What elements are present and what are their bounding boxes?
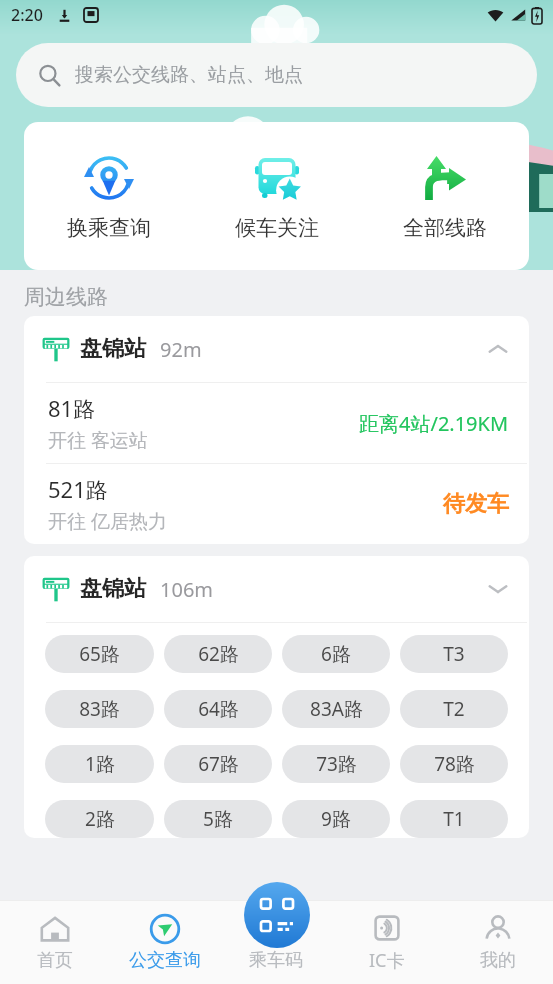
staticText: IC卡 bbox=[369, 948, 405, 973]
button[interactable]: 盘锦站 bbox=[24, 556, 529, 622]
staticText: 待发车 bbox=[443, 490, 509, 518]
button[interactable]: 全部线路 bbox=[361, 122, 529, 270]
button[interactable]: 搜索公交线路、站点、地点 bbox=[16, 43, 537, 107]
staticText: 1路 bbox=[85, 751, 115, 777]
staticText: 公交查询 bbox=[129, 949, 201, 972]
staticText: 我的 bbox=[480, 949, 516, 972]
button[interactable]: T1 bbox=[400, 800, 508, 838]
button[interactable]: 2路 bbox=[45, 800, 154, 838]
staticText: 开往 客运站 bbox=[48, 427, 148, 453]
button[interactable]: 67路 bbox=[164, 745, 272, 783]
staticText: 9路 bbox=[321, 806, 351, 832]
staticText: 78路 bbox=[434, 751, 475, 777]
staticText: 开往 亿居热力 bbox=[48, 508, 167, 534]
button[interactable]: 64路 bbox=[164, 690, 272, 728]
staticText: 521路 bbox=[48, 474, 108, 504]
staticText: 盘锦站 bbox=[80, 575, 146, 603]
button[interactable]: 62路 bbox=[164, 635, 272, 673]
button[interactable]: 5路 bbox=[164, 800, 272, 838]
button[interactable]: 换乘查询 bbox=[24, 122, 193, 270]
staticText: 83A路 bbox=[310, 696, 363, 722]
staticText: 距离4站/2.19KM bbox=[359, 410, 509, 437]
staticText: 65路 bbox=[79, 641, 120, 667]
staticText: T1 bbox=[443, 806, 465, 832]
staticText: 64路 bbox=[198, 696, 239, 722]
staticText: 106m bbox=[160, 576, 214, 603]
button[interactable]: 9路 bbox=[282, 800, 390, 838]
staticText: 搜索公交线路、站点、地点 bbox=[75, 63, 303, 87]
staticText: 候车关注 bbox=[235, 215, 319, 241]
button[interactable]: 65路 bbox=[45, 635, 154, 673]
staticText: 6路 bbox=[321, 641, 351, 667]
staticText: 2:20 bbox=[11, 4, 43, 26]
staticText: 92m bbox=[160, 336, 202, 363]
button[interactable]: 乘车码 bbox=[220, 913, 331, 972]
button[interactable]: 首页 bbox=[0, 913, 110, 972]
button[interactable]: 83A路 bbox=[282, 690, 390, 728]
button[interactable]: IC卡 bbox=[331, 912, 442, 973]
staticText: 73路 bbox=[316, 751, 357, 777]
button[interactable]: 78路 bbox=[400, 745, 508, 783]
staticText: 周边线路 bbox=[24, 284, 108, 310]
button[interactable]: 候车关注 bbox=[193, 122, 361, 270]
button[interactable]: 公交查询 bbox=[110, 913, 220, 972]
staticText: 81路 bbox=[48, 393, 96, 423]
staticText: 换乘查询 bbox=[67, 215, 151, 241]
staticText: 5路 bbox=[203, 806, 233, 832]
button[interactable]: 盘锦站 bbox=[24, 316, 529, 382]
button[interactable]: 83路 bbox=[45, 690, 154, 728]
staticText: T3 bbox=[443, 641, 465, 667]
button[interactable]: 6路 bbox=[282, 635, 390, 673]
staticText: 全部线路 bbox=[403, 215, 487, 241]
button[interactable]: T3 bbox=[400, 635, 508, 673]
staticText: 67路 bbox=[198, 751, 239, 777]
button[interactable]: 1路 bbox=[45, 745, 154, 783]
button[interactable]: 81路 bbox=[24, 383, 529, 463]
staticText: 83路 bbox=[79, 696, 120, 722]
staticText: T2 bbox=[443, 696, 465, 722]
button[interactable]: 我的 bbox=[442, 913, 553, 972]
button[interactable]: 73路 bbox=[282, 745, 390, 783]
staticText: 62路 bbox=[198, 641, 239, 667]
staticText: 乘车码 bbox=[249, 949, 303, 972]
staticText: 2路 bbox=[85, 806, 115, 832]
staticText: 首页 bbox=[37, 949, 73, 972]
button[interactable]: T2 bbox=[400, 690, 508, 728]
button[interactable]: 521路 bbox=[24, 464, 529, 544]
staticText: 盘锦站 bbox=[80, 335, 146, 363]
button[interactable]: 乘车码 bbox=[244, 882, 310, 948]
